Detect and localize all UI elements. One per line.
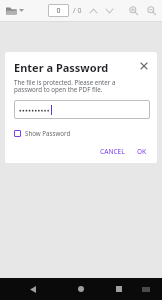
- button[interactable]: Recent apps: [111, 281, 127, 297]
- button[interactable]: Switch keyboard: [140, 284, 152, 294]
- staticText: Enter a Password: [14, 60, 138, 75]
- button[interactable]: 0: [48, 4, 69, 17]
- button[interactable]: Zoom out: [146, 5, 157, 16]
- button[interactable]: Open file: [5, 4, 25, 17]
- button[interactable]: Close: [138, 60, 150, 72]
- button[interactable]: Previous page: [88, 6, 98, 16]
- staticText: CANCEL: [100, 147, 125, 156]
- button[interactable]: Password field: [14, 100, 150, 119]
- staticText: The file is protected. Please enter a pa…: [14, 78, 143, 94]
- staticText: Show Password: [25, 129, 71, 137]
- staticText: OK: [137, 147, 147, 156]
- staticText: 0: [56, 6, 61, 16]
- staticText: / 0: [73, 6, 82, 16]
- button[interactable]: Back: [25, 281, 41, 297]
- button[interactable]: Home: [73, 281, 89, 297]
- button[interactable]: Show Password: [14, 128, 71, 138]
- button[interactable]: CANCEL: [97, 145, 128, 158]
- button[interactable]: OK: [134, 145, 150, 158]
- button[interactable]: Zoom in: [128, 5, 139, 16]
- button[interactable]: Next page: [104, 6, 114, 16]
